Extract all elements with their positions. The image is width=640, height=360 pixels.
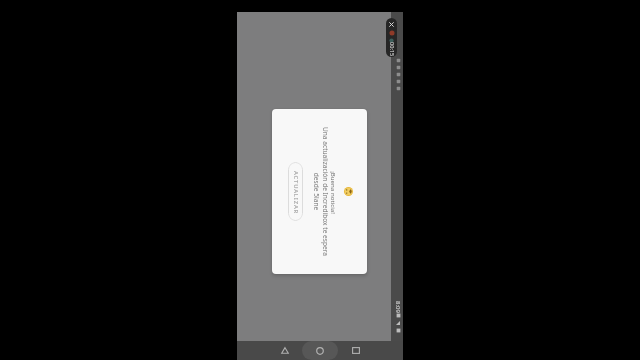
staticText: 8:09 xyxy=(394,301,402,313)
staticText: ACTUALIZAR xyxy=(291,170,299,214)
staticText: Una actualización de Incredibox te esper… xyxy=(320,126,329,256)
button[interactable]: Home xyxy=(307,341,333,360)
staticText: desde 5lane xyxy=(311,172,320,210)
button[interactable]: Recents xyxy=(343,341,369,360)
button[interactable]: ACTUALIZAR xyxy=(288,162,303,221)
staticText: ¡Buena noticia! xyxy=(330,171,338,214)
staticText: 00:15 xyxy=(388,42,396,57)
other: Stop recording xyxy=(389,30,395,36)
button[interactable]: Back xyxy=(272,341,298,360)
other: Pause recording xyxy=(389,38,394,43)
other: Close recorder xyxy=(388,21,395,28)
button[interactable]: Screen recorder xyxy=(386,18,397,57)
